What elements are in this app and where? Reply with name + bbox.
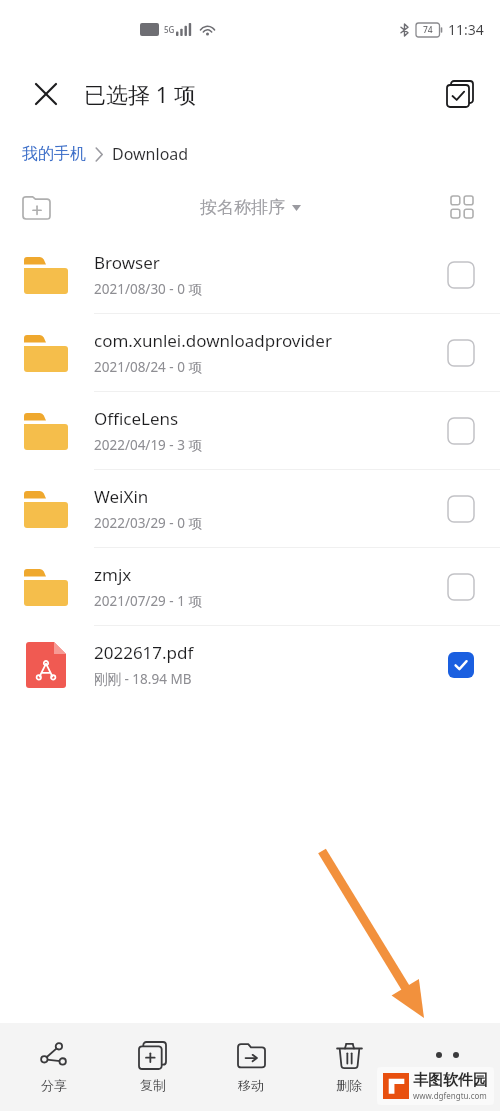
staticText: zmjx — [94, 563, 132, 586]
staticText: 删除 — [336, 1077, 362, 1093]
staticText: 2022/03/29 - 0 项 — [94, 514, 202, 532]
button[interactable]: Selected — [444, 648, 478, 682]
button[interactable]: 我的手机 — [22, 144, 86, 164]
button[interactable]: New folder — [12, 183, 60, 231]
staticText: 按名称排序 — [200, 197, 285, 218]
button[interactable]: Not selected — [444, 336, 478, 370]
staticText: 11:34 — [448, 20, 484, 39]
button[interactable]: Not selected — [444, 258, 478, 292]
button[interactable]: 2022617.pdf — [0, 626, 500, 703]
button[interactable]: Grid view — [438, 183, 486, 231]
button[interactable]: Select all — [438, 72, 482, 116]
staticText: 74 — [423, 24, 433, 36]
staticText: 2021/08/24 - 0 项 — [94, 358, 202, 376]
staticText: WeiXin — [94, 485, 149, 508]
staticText: 2022617.pdf — [94, 641, 194, 664]
staticText: Browser — [94, 251, 160, 274]
button[interactable]: More — [398, 1023, 496, 1111]
staticText: 2022/04/19 - 3 项 — [94, 436, 202, 454]
staticText: 刚刚 - 18.94 MB — [94, 670, 192, 688]
staticText: 2021/08/30 - 0 项 — [94, 280, 202, 298]
staticText: 分享 — [41, 1077, 67, 1093]
staticText: OfficeLens — [94, 407, 179, 430]
button[interactable]: 复制 — [103, 1023, 202, 1111]
button[interactable]: WeiXin — [0, 470, 500, 547]
button[interactable]: Not selected — [444, 414, 478, 448]
button[interactable]: Download — [112, 143, 189, 165]
staticText: 丰图软件园 — [413, 1071, 488, 1090]
button[interactable]: Not selected — [444, 570, 478, 604]
staticText: 我的手机 — [22, 144, 86, 164]
staticText: 5G — [164, 24, 175, 35]
button[interactable]: 分享 — [4, 1023, 103, 1111]
staticText: 已选择 1 项 — [84, 79, 197, 109]
button[interactable]: 按名称排序 — [192, 189, 309, 226]
button[interactable]: OfficeLens — [0, 392, 500, 469]
staticText: com.xunlei.downloadprovider — [94, 329, 332, 352]
button[interactable]: com.xunlei.downloadprovider — [0, 314, 500, 391]
button[interactable]: Browser — [0, 236, 500, 313]
button[interactable]: Not selected — [444, 492, 478, 526]
staticText: www.dgfengtu.com — [413, 1090, 487, 1101]
staticText: 移动 — [238, 1077, 264, 1093]
button[interactable]: zmjx — [0, 548, 500, 625]
button[interactable]: Close — [24, 72, 68, 116]
button[interactable]: 删除 — [300, 1023, 398, 1111]
button[interactable]: 移动 — [202, 1023, 300, 1111]
staticText: Download — [112, 143, 189, 165]
staticText: 复制 — [140, 1077, 166, 1093]
staticText: 2021/07/29 - 1 项 — [94, 592, 202, 610]
